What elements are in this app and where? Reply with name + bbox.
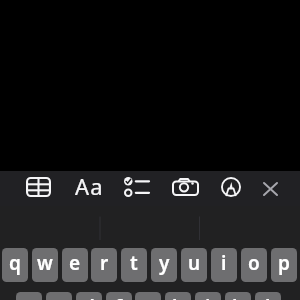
button[interactable]: s <box>46 292 72 300</box>
button[interactable]: d <box>76 292 102 300</box>
button[interactable]: j <box>195 292 221 300</box>
button[interactable]: h <box>165 292 191 300</box>
button[interactable]: a <box>16 292 42 300</box>
staticText: d <box>83 294 95 300</box>
button[interactable]: i <box>211 248 237 282</box>
staticText: l <box>265 294 271 300</box>
staticText: t <box>130 250 138 276</box>
button[interactable]: u <box>181 248 207 282</box>
button[interactable]: Markup <box>216 172 246 202</box>
staticText: q <box>9 250 21 276</box>
button[interactable]: w <box>32 248 58 282</box>
button[interactable]: r <box>91 248 117 282</box>
staticText: o <box>248 250 260 276</box>
button[interactable]: g <box>135 292 161 300</box>
button[interactable]: Checklist <box>121 172 151 202</box>
staticText: u <box>188 250 201 276</box>
button[interactable]: Text format <box>73 172 103 202</box>
button[interactable]: k <box>225 292 251 300</box>
button[interactable]: p <box>271 248 297 282</box>
button[interactable]: Close <box>255 172 285 202</box>
staticText: h <box>172 294 185 300</box>
staticText: k <box>232 294 244 300</box>
button[interactable]: t <box>121 248 147 282</box>
staticText: i <box>221 250 227 276</box>
button[interactable]: Camera <box>170 172 200 202</box>
staticText: Aa <box>75 171 104 201</box>
button[interactable]: e <box>62 248 88 282</box>
staticText: w <box>37 250 53 276</box>
button[interactable]: l <box>255 292 281 300</box>
staticText: r <box>100 250 109 276</box>
button[interactable]: f <box>106 292 132 300</box>
button[interactable]: q <box>2 248 28 282</box>
staticText: e <box>69 250 81 276</box>
button[interactable]: o <box>241 248 267 282</box>
button[interactable]: y <box>151 248 177 282</box>
button[interactable]: Insert table <box>23 172 53 202</box>
staticText: j <box>205 294 211 300</box>
staticText: f <box>115 294 123 300</box>
staticText: p <box>278 250 290 276</box>
staticText: y <box>159 250 170 276</box>
